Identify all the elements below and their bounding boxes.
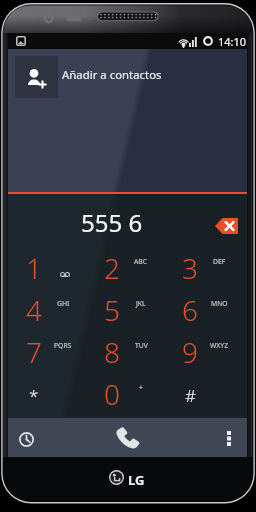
staticText: PQRS [54, 341, 72, 350]
button[interactable]: 9 [165, 331, 243, 373]
button[interactable]: # [165, 373, 243, 415]
staticText: 9 [182, 333, 198, 371]
staticText: MNO [211, 299, 228, 308]
staticText: GHI [57, 299, 70, 308]
button[interactable]: Recientes [8, 418, 45, 457]
button[interactable]: Añadir a contactos [8, 53, 247, 100]
staticText: + [139, 383, 143, 392]
button[interactable]: Llamar [45, 418, 210, 457]
button[interactable]: 1 [9, 247, 87, 289]
staticText: # [185, 384, 196, 407]
staticText: WXYZ [210, 341, 229, 350]
staticText: 0 [104, 375, 120, 413]
staticText: 8 [104, 333, 120, 371]
staticText: Añadir a contactos [62, 67, 162, 83]
button[interactable]: 3 [165, 247, 243, 289]
staticText: JKL [136, 299, 146, 308]
button[interactable]: 8 [87, 331, 165, 373]
button[interactable]: * [9, 373, 87, 415]
button[interactable]: 2 [87, 247, 165, 289]
button[interactable]: 6 [165, 289, 243, 331]
staticText: 2 [104, 249, 120, 287]
button[interactable]: 7 [9, 331, 87, 373]
staticText: LG [128, 471, 145, 489]
staticText: 3 [182, 249, 198, 287]
button[interactable]: 5 [87, 289, 165, 331]
staticText: 6 [182, 291, 198, 329]
button[interactable]: 4 [9, 289, 87, 331]
button[interactable]: 0 [87, 373, 165, 415]
staticText: * [29, 384, 39, 407]
button[interactable]: Más opciones [210, 418, 247, 457]
staticText: TUV [135, 341, 148, 350]
staticText: DEF [213, 257, 226, 266]
staticText: 1 [26, 249, 42, 287]
staticText: ABC [134, 257, 148, 266]
staticText: 5 [104, 291, 120, 329]
staticText: 555 6 [81, 206, 143, 239]
staticText: 4 [26, 291, 42, 329]
button[interactable]: Borrar [215, 218, 238, 234]
staticText: 14:10 [218, 34, 247, 49]
staticText: 7 [26, 333, 42, 371]
